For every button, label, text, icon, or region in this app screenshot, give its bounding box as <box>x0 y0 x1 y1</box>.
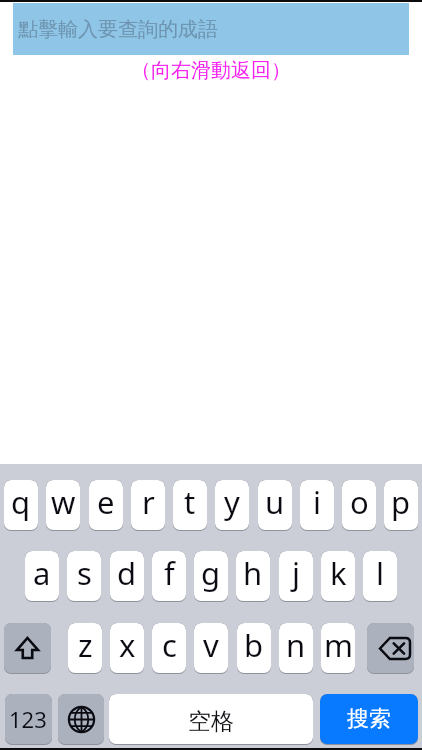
staticText: z <box>78 624 93 666</box>
staticText: t <box>184 481 196 523</box>
button[interactable]: r <box>131 480 165 530</box>
button[interactable]: Backspace <box>367 623 414 673</box>
button[interactable]: v <box>194 623 228 673</box>
staticText: 空格 <box>188 707 234 736</box>
button[interactable]: d <box>110 551 144 601</box>
button[interactable]: i <box>300 480 334 530</box>
button[interactable]: n <box>279 623 313 673</box>
button[interactable]: t <box>173 480 207 530</box>
button[interactable]: m <box>321 623 355 673</box>
button[interactable]: x <box>110 623 144 673</box>
button[interactable]: s <box>67 551 101 601</box>
button[interactable]: z <box>68 623 102 673</box>
staticText: （向右滑動返回） <box>0 58 422 83</box>
staticText: y <box>224 481 240 523</box>
staticText: s <box>77 552 92 594</box>
staticText: a <box>33 552 51 594</box>
staticText: g <box>201 552 221 594</box>
staticText: m <box>324 624 353 666</box>
button[interactable]: o <box>342 480 376 530</box>
staticText: p <box>391 481 411 523</box>
button[interactable]: 空格 <box>109 694 313 744</box>
staticText: d <box>117 552 137 594</box>
button[interactable]: k <box>321 551 355 601</box>
button[interactable]: f <box>152 551 186 601</box>
button[interactable]: g <box>194 551 228 601</box>
button[interactable]: q <box>4 480 38 530</box>
button[interactable]: 搜索 <box>320 694 418 744</box>
staticText: w <box>51 481 76 523</box>
button[interactable]: b <box>237 623 271 673</box>
staticText: h <box>243 552 263 594</box>
staticText: n <box>286 624 306 666</box>
staticText: k <box>330 552 347 594</box>
staticText: 點擊輸入要查詢的成語 <box>18 17 218 42</box>
button[interactable]: u <box>258 480 292 530</box>
staticText: j <box>292 552 300 594</box>
button[interactable]: c <box>152 623 186 673</box>
button[interactable]: Shift <box>4 623 51 673</box>
staticText: v <box>203 624 219 666</box>
staticText: c <box>162 624 177 666</box>
button[interactable]: p <box>384 480 418 530</box>
staticText: o <box>350 481 369 523</box>
button[interactable]: w <box>46 480 80 530</box>
staticText: l <box>376 552 384 594</box>
button[interactable]: e <box>89 480 123 530</box>
staticText: q <box>11 481 31 523</box>
staticText: e <box>97 481 115 523</box>
button[interactable]: j <box>279 551 313 601</box>
button[interactable]: 點擊輸入要查詢的成語 <box>13 3 409 55</box>
staticText: r <box>142 481 155 523</box>
staticText: x <box>119 624 136 666</box>
staticText: u <box>265 481 285 523</box>
button[interactable]: 123 <box>5 694 52 744</box>
button[interactable]: Change keyboard language <box>58 694 104 744</box>
button[interactable]: l <box>363 551 397 601</box>
button[interactable]: h <box>236 551 270 601</box>
staticText: 123 <box>9 704 47 734</box>
staticText: 搜索 <box>347 705 391 733</box>
staticText: f <box>164 552 175 594</box>
staticText: b <box>244 624 264 666</box>
button[interactable]: a <box>25 551 59 601</box>
button[interactable]: y <box>215 480 249 530</box>
staticText: i <box>313 481 321 523</box>
